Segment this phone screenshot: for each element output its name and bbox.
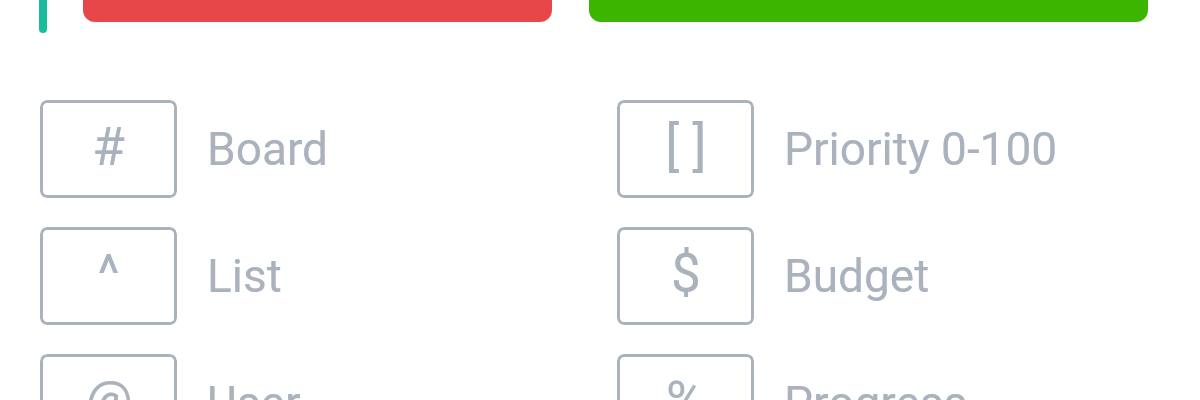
staticText: Board	[207, 122, 329, 176]
staticText: %	[666, 370, 705, 400]
other: User token @	[40, 354, 177, 400]
other: Accent marker	[39, 0, 47, 33]
staticText: ^	[97, 243, 120, 305]
other: Progress token %	[617, 354, 754, 400]
button[interactable]: List token ^	[40, 212, 282, 339]
staticText: [ ]	[665, 116, 707, 178]
other: Board token #	[40, 100, 177, 198]
button[interactable]: Progress token %	[617, 339, 968, 400]
button[interactable]: User token @	[40, 339, 301, 400]
staticText: Budget	[784, 249, 930, 303]
button[interactable]: Budget token $	[617, 212, 930, 339]
staticText: List	[207, 249, 282, 303]
button[interactable]: Priority 0-100 token [ ]	[617, 85, 1058, 212]
other: Priority 0-100 token [ ]	[617, 100, 754, 198]
button[interactable]: Overdue status	[83, 0, 552, 22]
staticText: Priority 0-100	[784, 122, 1058, 176]
staticText: @	[85, 370, 133, 400]
button[interactable]: Board token #	[40, 85, 329, 212]
staticText: #	[92, 116, 125, 178]
button[interactable]: On track status	[589, 0, 1148, 22]
staticText: User	[207, 376, 301, 400]
staticText: $	[671, 243, 701, 305]
other: Budget token $	[617, 227, 754, 325]
staticText: Progress	[784, 376, 968, 400]
other: List token ^	[40, 227, 177, 325]
